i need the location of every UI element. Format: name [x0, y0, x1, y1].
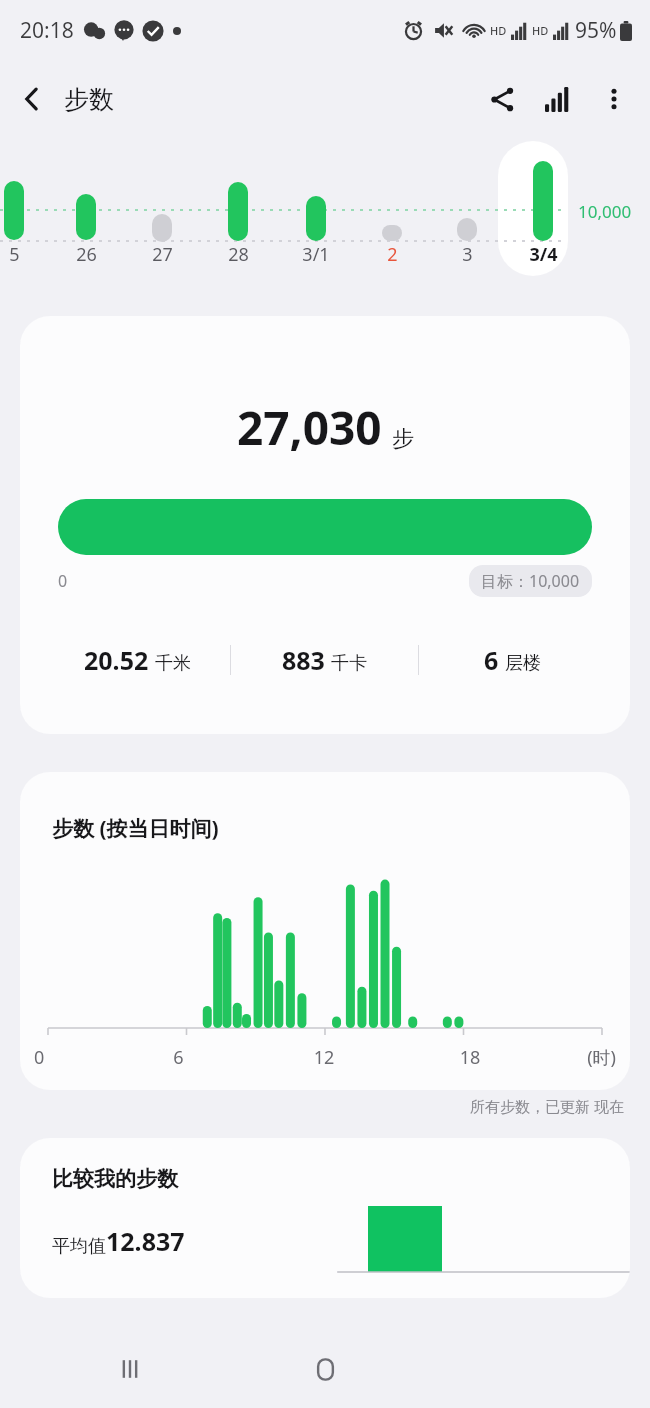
staticText: 步: [392, 425, 414, 453]
button[interactable]: 步数 (按当日时间): [20, 772, 630, 1090]
staticText: 12: [251, 1045, 397, 1070]
staticText: 步数: [64, 84, 114, 115]
button[interactable]: 28: [206, 242, 270, 267]
button[interactable]: 27,030: [20, 316, 630, 734]
staticText: 26: [76, 242, 97, 267]
staticText: 10,000: [578, 200, 632, 223]
staticText: 20:18: [20, 16, 74, 45]
staticText: 883: [282, 643, 325, 677]
staticText: 12.837: [106, 1224, 185, 1258]
staticText: 20.52: [84, 643, 149, 677]
staticText: 比较我的步数: [52, 1166, 178, 1192]
staticText: 3/1: [302, 242, 330, 267]
button[interactable]: [498, 141, 568, 276]
staticText: 95%: [575, 16, 617, 45]
button[interactable]: Back: [0, 67, 64, 131]
staticText: 28: [228, 242, 249, 267]
button[interactable]: 比较我的步数: [20, 1138, 630, 1298]
button[interactable]: 3/1: [284, 242, 348, 267]
staticText: 0: [34, 1045, 106, 1070]
staticText: 27,030: [237, 396, 382, 459]
staticText: 千卡: [331, 652, 367, 675]
button[interactable]: 27: [130, 242, 194, 267]
staticText: 所有步数，已更新 现在: [0, 1096, 624, 1116]
staticText: (时): [543, 1045, 616, 1070]
staticText: 6: [484, 643, 499, 677]
staticText: 千米: [155, 652, 191, 675]
button[interactable]: Recents: [100, 1339, 160, 1399]
staticText: 层楼: [505, 652, 541, 675]
button[interactable]: 2: [360, 242, 424, 267]
button[interactable]: 3: [435, 242, 499, 267]
staticText: 0: [58, 570, 68, 592]
staticText: 5: [9, 242, 20, 267]
button[interactable]: 5: [0, 242, 46, 267]
button[interactable]: 26: [54, 242, 118, 267]
button[interactable]: 3/4: [511, 242, 575, 267]
staticText: 目标：10,000: [481, 570, 580, 592]
button[interactable]: Home: [295, 1339, 355, 1399]
staticText: 27: [152, 242, 173, 267]
staticText: 6: [106, 1045, 251, 1070]
staticText: 步数 (按当日时间): [52, 814, 219, 843]
staticText: 3: [462, 242, 473, 267]
staticText: 3/4: [529, 242, 558, 267]
button[interactable]: Share: [474, 71, 530, 127]
staticText: 18: [397, 1045, 543, 1070]
staticText: 2: [387, 242, 398, 267]
button[interactable]: More options: [586, 71, 642, 127]
staticText: HD: [490, 23, 507, 38]
staticText: 平均值: [52, 1235, 106, 1258]
button[interactable]: Chart: [530, 71, 586, 127]
staticText: HD: [532, 23, 549, 38]
